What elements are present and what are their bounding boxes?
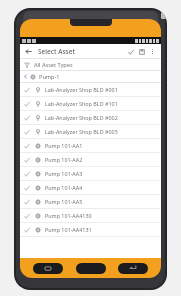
staticText: Pump 101-AA1: [45, 142, 83, 149]
button[interactable]: More options: [147, 46, 158, 57]
staticText: Pump 101-AA5: [45, 198, 83, 205]
staticText: Lab-Analyzer Shop BLD #001: [45, 86, 118, 93]
button[interactable]: Back: [118, 263, 148, 274]
button[interactable]: Pump 101-AA4131: [20, 223, 161, 236]
staticText: Select Asset: [38, 47, 75, 56]
staticText: Pump-1: [39, 73, 60, 81]
button[interactable]: Lab-Analyzer Shop BLD #002: [20, 111, 161, 124]
button[interactable]: Back: [23, 46, 34, 57]
staticText: Lab-Analyzer Shop BLD #101: [45, 100, 118, 107]
button[interactable]: Home: [76, 263, 106, 274]
button[interactable]: All Asset Types: [20, 59, 161, 70]
staticText: Pump 101-AA4: [45, 184, 83, 191]
button[interactable]: Pump 101-AA4: [20, 181, 161, 194]
button[interactable]: Pump-1: [20, 71, 161, 82]
staticText: Pump 101-AA3: [45, 170, 83, 177]
button[interactable]: Confirm: [125, 46, 136, 57]
button[interactable]: Lab-Analyzer Shop BLD #101: [20, 97, 161, 110]
staticText: Lab-Analyzer Shop BLD #005: [45, 128, 118, 135]
button[interactable]: Pump 101-AA4130: [20, 209, 161, 222]
staticText: Pump 101-AA4131: [45, 226, 92, 233]
button[interactable]: Save: [136, 46, 147, 57]
button[interactable]: Lab-Analyzer Shop BLD #001: [20, 83, 161, 96]
button[interactable]: Pump 101-AA1: [20, 139, 161, 152]
staticText: Pump 101-AA2: [45, 156, 83, 163]
button[interactable]: Pump 101-AA3: [20, 167, 161, 180]
button[interactable]: Pump 101-AA2: [20, 153, 161, 166]
staticText: All Asset Types: [34, 61, 73, 69]
button[interactable]: Pump 101-AA5: [20, 195, 161, 208]
staticText: Pump 101-AA4130: [45, 212, 92, 219]
button[interactable]: Lab-Analyzer Shop BLD #005: [20, 125, 161, 138]
button[interactable]: Recent apps: [33, 263, 63, 274]
staticText: Lab-Analyzer Shop BLD #002: [45, 114, 118, 121]
